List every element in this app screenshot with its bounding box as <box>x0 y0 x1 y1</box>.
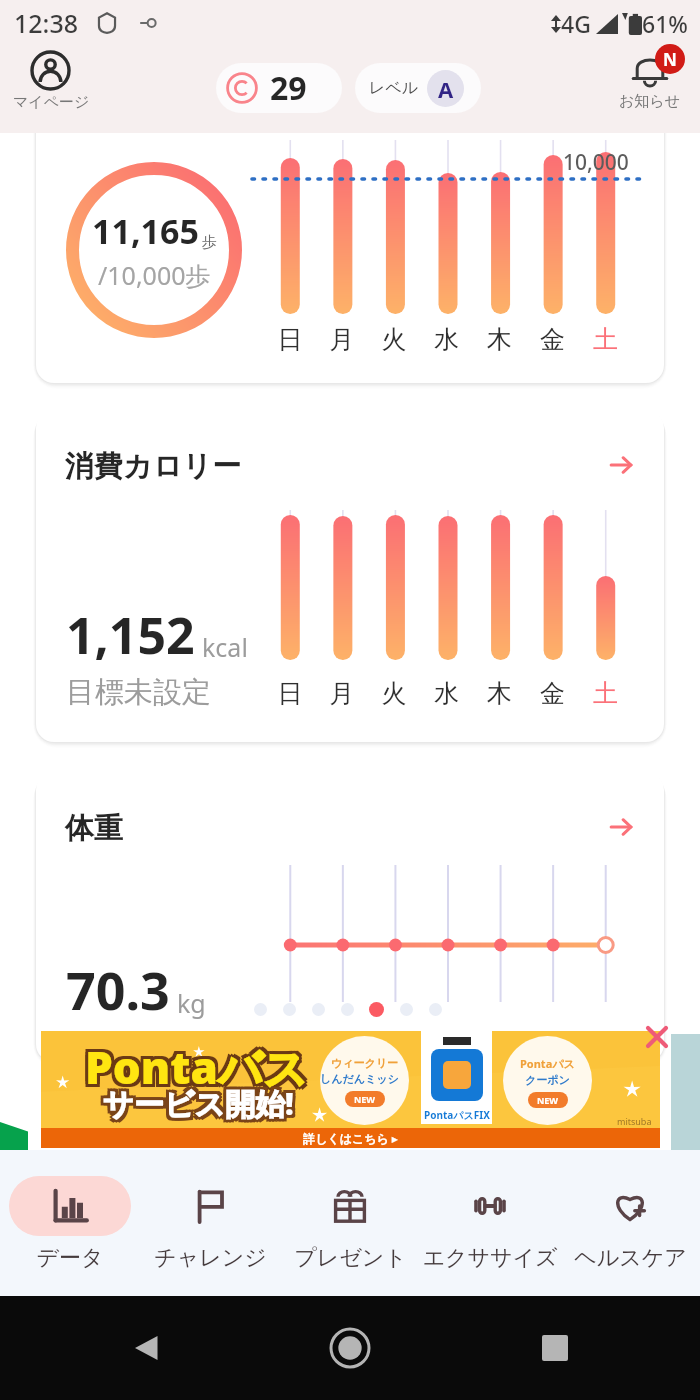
staticText: 土 <box>579 324 632 355</box>
staticText: チャレンジ <box>154 1244 267 1272</box>
button[interactable]: 体重詳細 <box>608 814 634 840</box>
staticText: Pontaバス <box>82 1037 306 1097</box>
staticText: Pontaバス <box>88 1037 312 1097</box>
staticText: 体重 <box>65 810 123 847</box>
staticText: サービス開始! <box>100 1080 291 1121</box>
button[interactable]: 消費カロリー <box>36 410 664 742</box>
button[interactable]: プレゼント <box>280 1150 420 1296</box>
staticText: しんだんミッション <box>320 1072 409 1086</box>
button[interactable]: 体重 <box>36 772 664 1062</box>
staticText: 火 <box>368 678 420 709</box>
staticText: ウィークリー <box>331 1056 399 1070</box>
staticText: プレゼント <box>294 1244 407 1272</box>
staticText: 月 <box>316 324 368 355</box>
staticText: クーポン <box>525 1073 570 1087</box>
staticText: 日 <box>264 324 316 355</box>
staticText: レベル <box>369 78 419 98</box>
staticText: サービス開始! <box>103 1083 294 1124</box>
staticText: kcal <box>202 630 248 664</box>
staticText: ヘルスケア <box>574 1244 687 1272</box>
button[interactable]: ホーム <box>329 1327 371 1369</box>
button[interactable]: 29 <box>216 63 342 113</box>
staticText: 金 <box>526 678 579 709</box>
staticText: サービス開始! <box>106 1086 297 1127</box>
staticText: マイページ <box>13 93 90 112</box>
staticText: 歩 <box>202 233 217 252</box>
button[interactable]: 履歴 <box>542 1335 568 1361</box>
staticText: Pontaバス <box>88 1034 312 1094</box>
staticText: N <box>663 48 677 71</box>
staticText: エクササイズ <box>422 1244 558 1272</box>
button[interactable]: Pontaバス <box>41 1031 660 1148</box>
button[interactable]: マイページ <box>6 50 96 130</box>
button[interactable]: データ <box>0 1150 140 1296</box>
staticText: Pontaバス <box>82 1034 306 1094</box>
staticText: サービス開始! <box>106 1080 297 1121</box>
staticText: サービス開始! <box>100 1083 291 1124</box>
staticText: 土 <box>579 678 632 709</box>
staticText: Pontaパス <box>520 1056 575 1071</box>
staticText: 消費カロリー <box>65 448 242 485</box>
button[interactable]: 閉じる <box>645 1025 669 1049</box>
staticText: 29 <box>270 66 307 110</box>
staticText: お知らせ <box>619 92 681 111</box>
staticText: サービス開始! <box>103 1086 294 1127</box>
staticText: 4G <box>561 8 591 39</box>
staticText: 詳しくはこちら ▸ <box>303 1130 398 1146</box>
button[interactable]: ヘルスケア <box>560 1150 700 1296</box>
staticText: Pontaバス <box>85 1034 309 1094</box>
staticText: NEW <box>354 1093 376 1105</box>
staticText: 10,000 <box>563 148 629 177</box>
staticText: 水 <box>420 678 473 709</box>
staticText: NEW <box>537 1094 559 1106</box>
staticText: PontaパスFIX <box>424 1108 490 1122</box>
staticText: 11,165 <box>92 208 199 254</box>
staticText: kg <box>177 986 206 1020</box>
button[interactable]: チャレンジ <box>140 1150 280 1296</box>
staticText: 61% <box>642 8 688 39</box>
staticText: Pontaバス <box>88 1040 312 1100</box>
staticText: mitsuba <box>617 1115 652 1127</box>
button[interactable]: エクササイズ <box>420 1150 560 1296</box>
staticText: 金 <box>526 324 579 355</box>
staticText: 火 <box>368 324 420 355</box>
staticText: サービス開始! <box>100 1086 291 1127</box>
staticText: サービス開始! <box>103 1080 294 1121</box>
staticText: 1,152 <box>66 601 195 669</box>
staticText: Pontaバス <box>85 1037 309 1097</box>
staticText: 日 <box>264 678 316 709</box>
staticText: データ <box>36 1244 104 1272</box>
staticText: /10,000歩 <box>98 258 211 292</box>
staticText: A <box>438 74 454 104</box>
button[interactable]: レベル <box>355 63 481 113</box>
staticText: 木 <box>473 324 526 355</box>
staticText: 月 <box>316 678 368 709</box>
button[interactable]: 戻る <box>132 1333 162 1363</box>
staticText: 木 <box>473 678 526 709</box>
staticText: 目標未設定 <box>66 674 211 711</box>
staticText: Pontaバス <box>82 1040 306 1100</box>
staticText: Pontaバス <box>85 1040 309 1100</box>
button[interactable]: 消費カロリー詳細 <box>608 452 634 478</box>
staticText: 12:38 <box>14 6 79 40</box>
staticText: 水 <box>420 324 473 355</box>
staticText: 70.3 <box>66 954 170 1025</box>
staticText: サービス開始! <box>106 1083 297 1124</box>
button[interactable]: お知らせ <box>605 50 695 130</box>
button[interactable]: 11,165 <box>36 133 664 383</box>
